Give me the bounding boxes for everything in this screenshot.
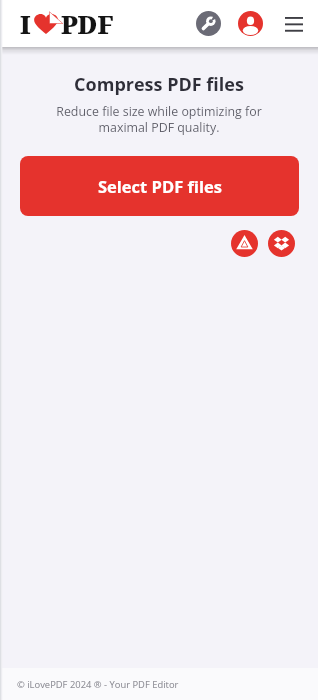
button[interactable]: Account	[238, 11, 263, 36]
staticText: Compress PDF files	[0, 72, 318, 97]
button[interactable]: Tools	[196, 11, 221, 36]
staticText: Reduce file size while optimizing for ma…	[50, 103, 268, 136]
staticText: Select PDF files	[98, 175, 222, 197]
staticText: © iLovePDF 2024 ® - Your PDF Editor	[17, 678, 179, 691]
button[interactable]: Select PDF files	[20, 156, 299, 216]
button[interactable]: Upload from Google Drive	[231, 230, 258, 257]
button[interactable]: Menu	[283, 13, 305, 35]
button[interactable]: Upload from Dropbox	[268, 230, 295, 257]
staticText: I	[20, 7, 31, 41]
staticText: PDF	[61, 7, 114, 41]
